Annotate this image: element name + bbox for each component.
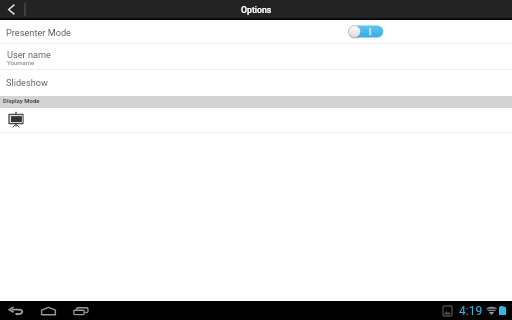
- staticText: User name: [7, 49, 51, 60]
- staticText: Presenter Mode: [6, 27, 71, 38]
- staticText: Slideshow: [6, 77, 48, 88]
- button[interactable]: Presenter Mode: [0, 20, 512, 43]
- button[interactable]: Screenshot captured: [443, 301, 452, 320]
- staticText: Options: [241, 5, 272, 15]
- button[interactable]: Slideshow: [0, 70, 512, 96]
- staticText: Display Mode: [3, 97, 40, 104]
- button[interactable]: Home: [29, 301, 67, 320]
- button[interactable]: Presentation display mode: [0, 108, 512, 132]
- button[interactable]: Presenter Mode: [348, 25, 384, 38]
- button[interactable]: User name: [0, 44, 512, 69]
- staticText: 4:19: [459, 304, 483, 318]
- button[interactable]: Back: [3, 301, 29, 320]
- staticText: Yourname: [7, 59, 35, 66]
- button[interactable]: Navigate up: [0, 0, 24, 18]
- button[interactable]: Recent apps: [67, 301, 93, 320]
